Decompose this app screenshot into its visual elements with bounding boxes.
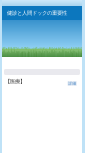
- staticText: 健診と人間ドックの重要性: [7, 10, 67, 16]
- staticText: 【医療】: [5, 78, 25, 85]
- staticText: 詳細: [68, 81, 76, 86]
- button[interactable]: 詳細: [67, 81, 77, 86]
